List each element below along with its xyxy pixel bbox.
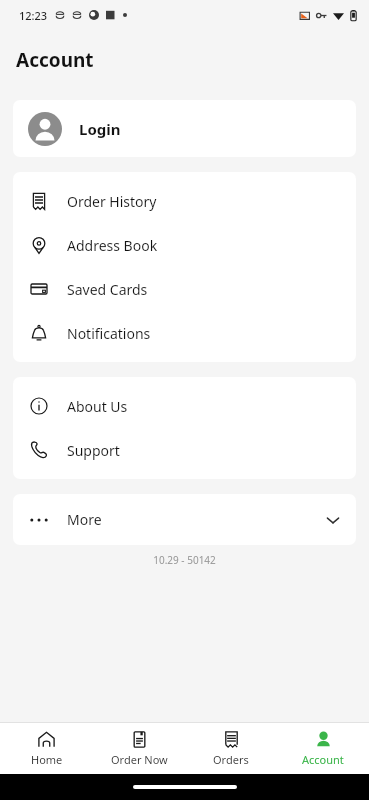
staticText: Support [67, 441, 120, 460]
button[interactable]: Account [277, 723, 369, 774]
staticText: Notifications [67, 324, 151, 343]
staticText: Saved Cards [67, 280, 148, 299]
staticText: Order Now [111, 752, 168, 767]
staticText: Order History [67, 192, 157, 211]
button[interactable]: Saved Cards [13, 267, 356, 311]
button[interactable]: Login [13, 100, 356, 157]
staticText: Login [79, 119, 121, 139]
button[interactable]: Order History [13, 179, 356, 223]
button[interactable]: More [13, 494, 356, 545]
staticText: 12:23 [19, 8, 48, 23]
button[interactable]: Orders [185, 723, 277, 774]
staticText: Account [302, 752, 344, 767]
button[interactable]: Order Now [93, 723, 185, 774]
button[interactable]: Address Book [13, 223, 356, 267]
staticText: About Us [67, 397, 128, 416]
staticText: Account [16, 47, 94, 73]
button[interactable]: Support [13, 428, 356, 472]
button[interactable]: Home [0, 723, 93, 774]
staticText: 10.29 - 50142 [0, 553, 369, 567]
staticText: Home [31, 752, 63, 767]
button[interactable]: Notifications [13, 311, 356, 355]
staticText: Orders [213, 752, 249, 767]
staticText: More [67, 510, 102, 529]
staticText: Address Book [67, 236, 158, 255]
button[interactable]: About Us [13, 384, 356, 428]
